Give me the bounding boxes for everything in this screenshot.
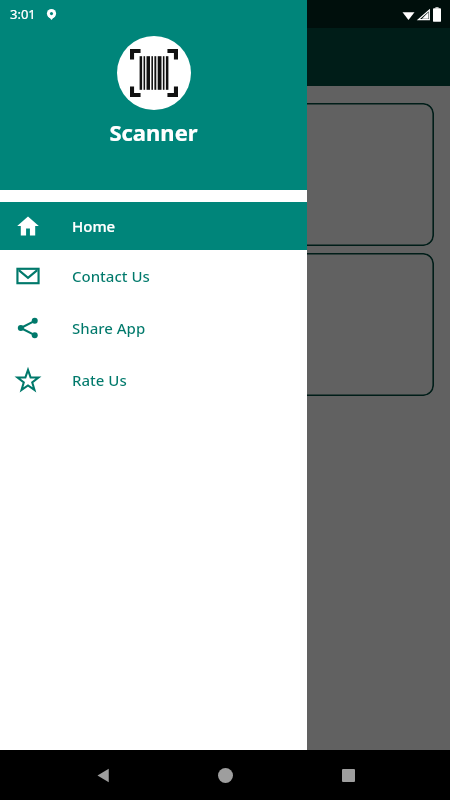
button[interactable]: Share App: [0, 302, 307, 354]
button[interactable]: Rate Us: [0, 354, 307, 406]
button[interactable]: History: [16, 253, 434, 396]
staticText: Share App: [72, 318, 146, 338]
button[interactable]: Close navigation drawer: [0, 0, 450, 750]
button[interactable]: Back: [83, 755, 123, 795]
staticText: Contact Us: [72, 266, 150, 286]
staticText: Rate Us: [72, 370, 127, 390]
button[interactable]: Home: [205, 755, 245, 795]
staticText: 3:01: [10, 5, 36, 23]
button[interactable]: Home: [0, 202, 307, 250]
staticText: Generate: [42, 198, 130, 225]
staticText: Scanner: [109, 117, 198, 147]
button[interactable]: Generate: [16, 103, 434, 246]
staticText: Home: [72, 216, 116, 236]
button[interactable]: Recent apps: [328, 755, 368, 795]
button[interactable]: Contact Us: [0, 250, 307, 302]
